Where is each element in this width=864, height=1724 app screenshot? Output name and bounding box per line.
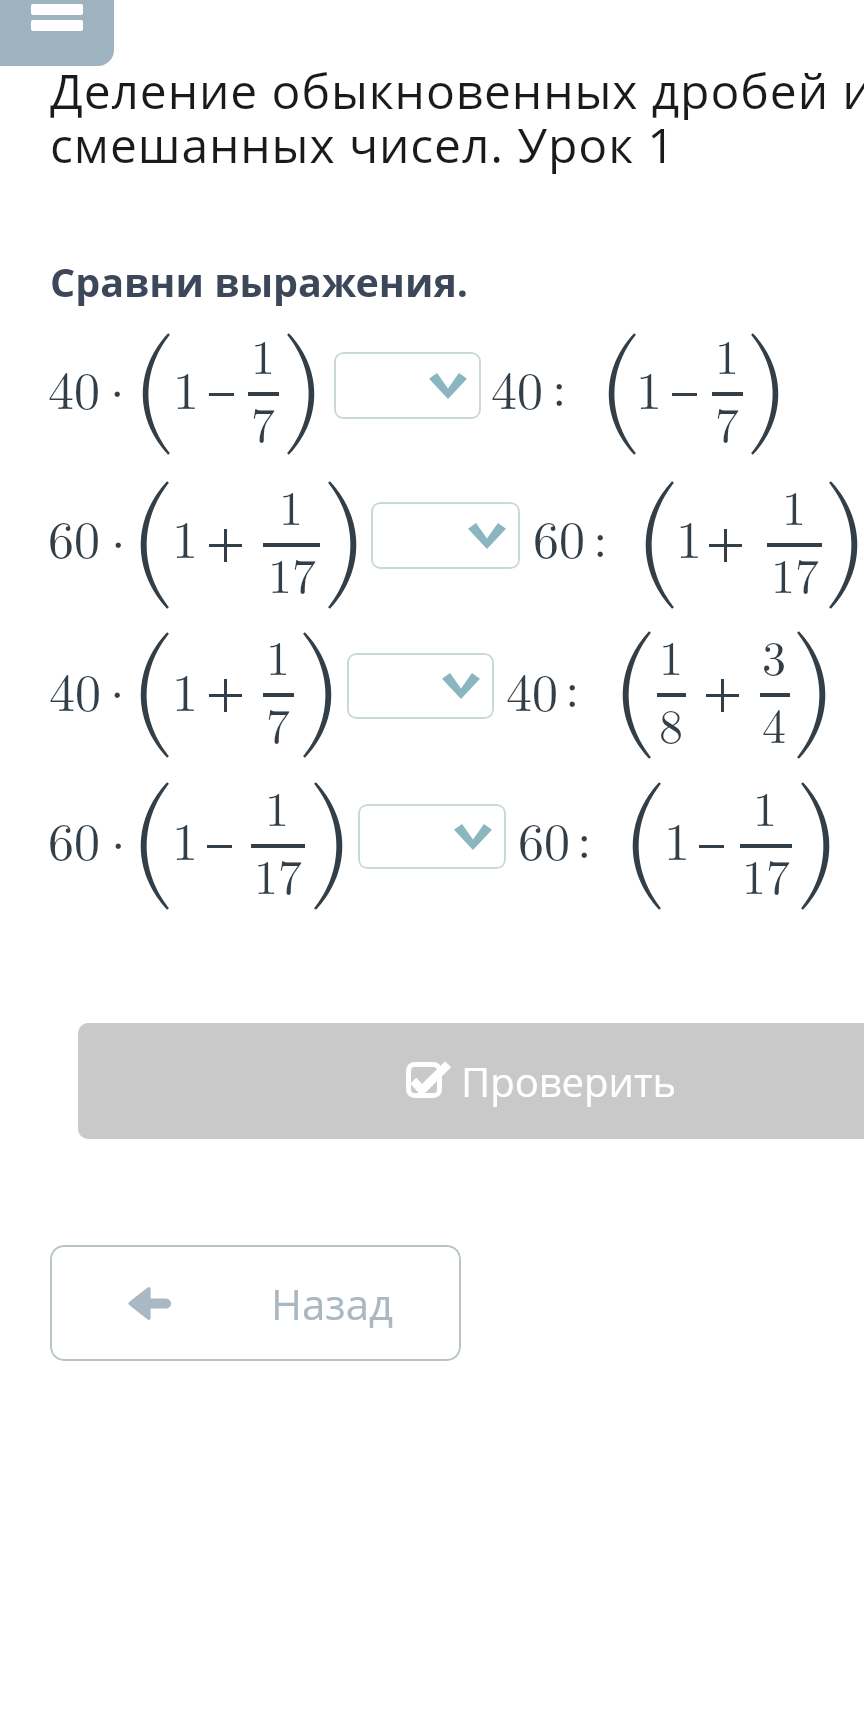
staticText: 40 xyxy=(506,652,559,726)
staticText: 40 xyxy=(48,350,101,424)
staticText: 60 xyxy=(533,499,586,573)
staticText: 1 xyxy=(279,471,304,539)
staticText: 1 xyxy=(676,499,703,573)
staticText: 1 xyxy=(636,350,663,424)
staticText: : xyxy=(577,799,592,873)
staticText: Деление обыкновенных дробей и смешанных … xyxy=(50,58,864,177)
staticText: 60 xyxy=(518,801,571,875)
staticText: 1 xyxy=(251,320,276,388)
button[interactable]: Выбрать знак сравнения xyxy=(371,502,520,569)
button[interactable]: Проверить xyxy=(78,1023,864,1139)
staticText: 1 xyxy=(172,801,199,875)
staticText: · xyxy=(97,654,138,728)
button[interactable]: Выбрать знак сравнения xyxy=(347,653,494,719)
staticText: 1 xyxy=(782,471,807,539)
staticText: · xyxy=(97,353,138,427)
staticText: · xyxy=(98,805,139,879)
button[interactable]: Назад xyxy=(50,1245,461,1361)
staticText: 17 xyxy=(771,539,820,607)
staticText: 1 xyxy=(715,320,740,388)
staticText: 40 xyxy=(49,652,102,726)
staticText: 8 xyxy=(659,689,684,757)
staticText: 1 xyxy=(265,772,290,840)
staticText: 4 xyxy=(762,689,787,757)
staticText: 17 xyxy=(742,840,791,908)
staticText: 1 xyxy=(172,652,199,726)
staticText: 17 xyxy=(254,840,303,908)
staticText: · xyxy=(98,504,139,578)
staticText: 7 xyxy=(251,388,276,456)
staticText: 60 xyxy=(48,801,101,875)
staticText: 1 xyxy=(173,350,200,424)
staticText: Назад xyxy=(271,1275,394,1332)
staticText: : xyxy=(593,498,608,572)
staticText: 7 xyxy=(715,388,740,456)
staticText: 1 xyxy=(266,621,291,689)
button[interactable]: Выбрать знак сравнения xyxy=(334,352,481,419)
staticText: 1 xyxy=(172,499,199,573)
staticText: : xyxy=(565,648,580,722)
staticText: 1 xyxy=(753,772,778,840)
button[interactable]: Выбрать знак сравнения xyxy=(358,804,506,869)
staticText: 1 xyxy=(659,621,684,689)
button[interactable]: Меню xyxy=(0,0,114,66)
staticText: 60 xyxy=(48,499,101,573)
staticText: Проверить xyxy=(461,1054,677,1108)
staticText: 3 xyxy=(762,621,787,689)
staticText: Сравни выражения. xyxy=(50,255,469,309)
staticText: 7 xyxy=(266,689,291,757)
staticText: 1 xyxy=(664,801,691,875)
staticText: : xyxy=(552,347,567,421)
staticText: 40 xyxy=(491,350,544,424)
staticText: 17 xyxy=(268,539,317,607)
